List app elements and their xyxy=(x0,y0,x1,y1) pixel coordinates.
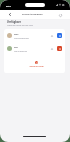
staticText: Verfügbare xyxy=(7,20,21,23)
staticText: Produkt auswählen xyxy=(22,13,43,16)
button[interactable]: Back xyxy=(6,11,13,18)
staticText: Mia xyxy=(14,46,18,49)
button[interactable]: Mia xyxy=(4,42,65,55)
staticText: Wähle ein Gerät aus der Liste xyxy=(7,24,33,27)
staticText: Max xyxy=(14,33,19,36)
button[interactable]: Notifications xyxy=(49,46,54,51)
button[interactable]: Refresh xyxy=(57,12,63,18)
button[interactable]: Weiteres Gerät xyxy=(4,55,65,73)
staticText: Max Mustermann xyxy=(14,37,29,39)
button[interactable]: Open device xyxy=(57,46,62,51)
staticText: Weiteres Gerät xyxy=(29,65,44,68)
button[interactable]: Notifications xyxy=(49,33,54,38)
staticText: Mia Musterfrau xyxy=(14,50,28,52)
staticText: 9:41 xyxy=(6,4,11,7)
button[interactable]: Open device xyxy=(57,33,62,38)
button[interactable]: Max xyxy=(4,29,65,42)
